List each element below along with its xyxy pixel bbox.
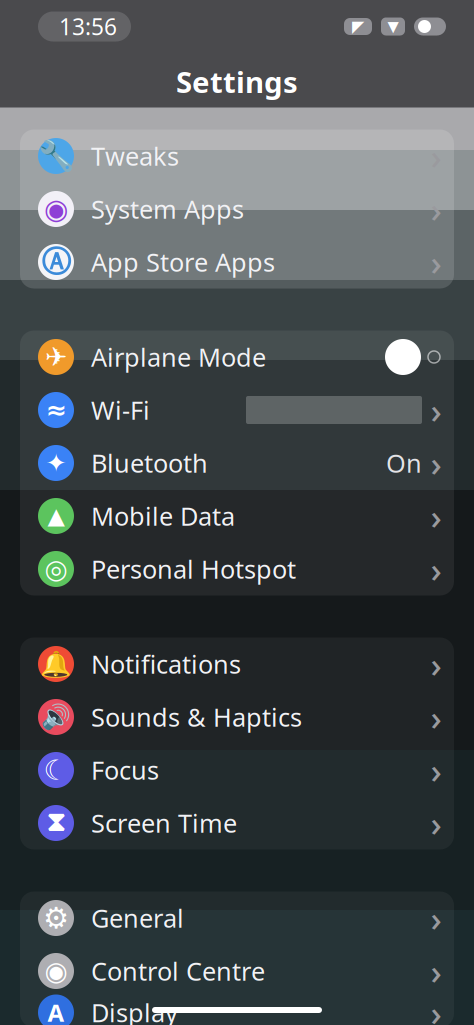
staticText: ◉	[44, 193, 68, 225]
button[interactable]: ◉	[20, 182, 454, 235]
staticText: ›	[430, 800, 441, 846]
staticText: Settings	[176, 62, 298, 101]
staticText: ›	[430, 747, 441, 793]
staticText: Personal Hotspot	[91, 552, 296, 586]
staticText: Notifications	[91, 647, 241, 681]
staticText: ◉	[44, 956, 67, 986]
staticText: ◎	[44, 554, 67, 584]
staticText: 🔧	[37, 139, 74, 173]
staticText: 🔔	[40, 649, 72, 678]
staticText: ›	[430, 387, 441, 433]
staticText: Tweaks	[91, 139, 179, 173]
staticText: ›	[430, 186, 441, 232]
staticText: ›	[430, 641, 441, 687]
staticText: ›	[430, 493, 441, 539]
button[interactable]: ⧗	[20, 796, 454, 849]
button[interactable]: ≈	[20, 383, 454, 436]
staticText: ›	[430, 694, 441, 740]
staticText: Airplane Mode	[91, 340, 266, 374]
staticText: ▲	[47, 503, 64, 529]
staticText: ›	[430, 948, 441, 994]
staticText: General	[91, 901, 184, 935]
button[interactable]: ⚙	[20, 891, 454, 944]
staticText: ›	[430, 989, 441, 1025]
button[interactable]: ◉	[20, 944, 454, 997]
staticText: Sounds & Haptics	[91, 700, 302, 734]
staticText: Display	[91, 996, 178, 1025]
staticText: ⚙	[43, 901, 69, 935]
staticText: Bluetooth	[91, 446, 208, 480]
staticText: Control Centre	[91, 954, 265, 988]
button[interactable]: ✈	[20, 330, 454, 383]
staticText: Ⓐ	[41, 244, 70, 280]
staticText: ≈	[45, 396, 66, 424]
staticText: 13:56	[59, 11, 117, 41]
staticText: ›	[430, 546, 441, 592]
staticText: ◤	[352, 17, 364, 36]
button[interactable]: A	[20, 997, 454, 1025]
staticText: Focus	[91, 753, 159, 787]
staticText: System Apps	[91, 192, 244, 226]
button[interactable]: ◎	[20, 542, 454, 595]
staticText: ⧗	[46, 810, 65, 836]
staticText: ☾	[43, 754, 68, 786]
staticText: ▼	[387, 18, 398, 35]
button[interactable]: 🔔	[20, 637, 454, 690]
button[interactable]: ▲	[20, 489, 454, 542]
staticText: A	[47, 997, 64, 1025]
staticText: 🔊	[41, 703, 71, 731]
button[interactable]: ✦	[20, 436, 454, 489]
staticText: On	[386, 446, 422, 480]
staticText: ✦	[45, 449, 66, 477]
staticText: ›	[430, 440, 441, 486]
staticText: ✈	[45, 342, 67, 372]
staticText: Mobile Data	[91, 499, 235, 533]
staticText: Wi-Fi	[91, 393, 150, 427]
button[interactable]: Ⓐ	[20, 235, 454, 288]
button[interactable]: 🔧	[20, 129, 454, 182]
staticText: Screen Time	[91, 806, 237, 840]
staticText: ›	[430, 133, 441, 179]
staticText: ›	[430, 895, 441, 941]
button[interactable]: 🔊	[20, 690, 454, 743]
staticText: ›	[430, 239, 441, 285]
button[interactable]: ☾	[20, 743, 454, 796]
staticText: App Store Apps	[91, 245, 275, 279]
